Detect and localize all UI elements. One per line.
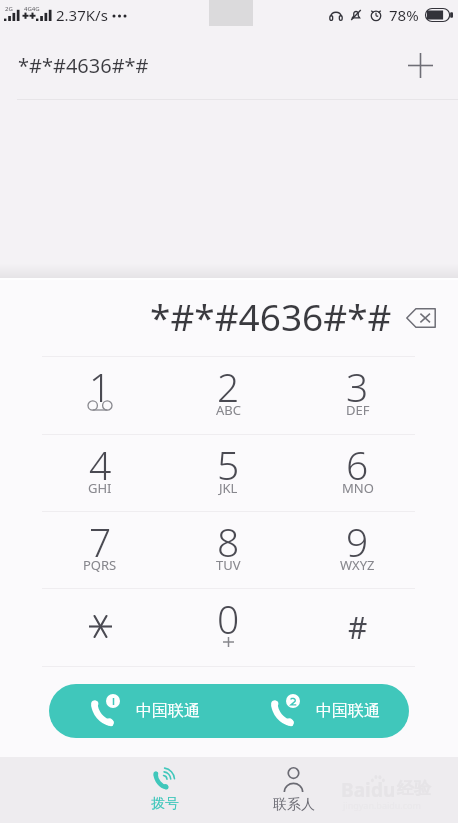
staticText: 1 <box>89 360 112 413</box>
staticText: ABC <box>216 401 241 419</box>
button[interactable] <box>36 588 164 666</box>
staticText: 8 <box>217 515 240 568</box>
staticText: *#*#4636#*# <box>18 52 149 79</box>
staticText: 0 <box>217 592 240 645</box>
button[interactable]: 5 <box>164 434 293 511</box>
staticText: TUV <box>216 556 241 574</box>
staticText: # <box>348 607 368 648</box>
button[interactable]: 8 <box>164 511 293 588</box>
button[interactable]: Backspace <box>399 296 443 340</box>
button[interactable]: 2 <box>164 356 293 434</box>
button[interactable]: 9 <box>293 511 422 588</box>
button[interactable]: 1 <box>36 356 164 434</box>
button[interactable]: Add <box>398 43 442 87</box>
button[interactable]: 中国联通 <box>49 684 229 738</box>
staticText: 5 <box>217 438 240 491</box>
button[interactable]: 3 <box>293 356 422 434</box>
button[interactable]: 7 <box>36 511 164 588</box>
staticText: 联系人 <box>273 796 315 814</box>
button[interactable]: 6 <box>293 434 422 511</box>
staticText: JKL <box>219 479 238 497</box>
button[interactable]: # <box>293 588 422 666</box>
staticText: 9 <box>346 515 369 568</box>
staticText: 6 <box>346 438 369 491</box>
staticText: 中国联通 <box>136 701 200 721</box>
button[interactable]: 中国联通 <box>229 684 409 738</box>
staticText: 4 <box>89 438 112 491</box>
staticText: MNO <box>342 479 374 497</box>
button[interactable]: 4 <box>36 434 164 511</box>
staticText: du <box>371 777 396 803</box>
staticText: 7 <box>89 515 112 568</box>
staticText: 2 <box>217 360 240 413</box>
staticText: 4G4G <box>24 5 40 13</box>
staticText: PQRS <box>83 556 117 574</box>
staticText: 2.37K/s <box>56 5 108 25</box>
staticText: Bai <box>341 777 371 803</box>
button[interactable]: 拨号 <box>100 760 229 819</box>
staticText: 中国联通 <box>316 701 380 721</box>
staticText: WXYZ <box>340 556 375 574</box>
staticText: 经验 <box>397 778 431 799</box>
button[interactable]: 0 <box>164 588 293 666</box>
staticText: 2G <box>5 5 13 13</box>
button[interactable]: 联系人 <box>229 760 358 820</box>
staticText: 78% <box>389 5 419 25</box>
staticText: DEF <box>346 401 370 419</box>
staticText: *#*#4636#*# <box>150 291 392 341</box>
staticText: 3 <box>346 360 369 413</box>
staticText: GHI <box>88 479 112 497</box>
staticText: 拨号 <box>151 795 179 813</box>
